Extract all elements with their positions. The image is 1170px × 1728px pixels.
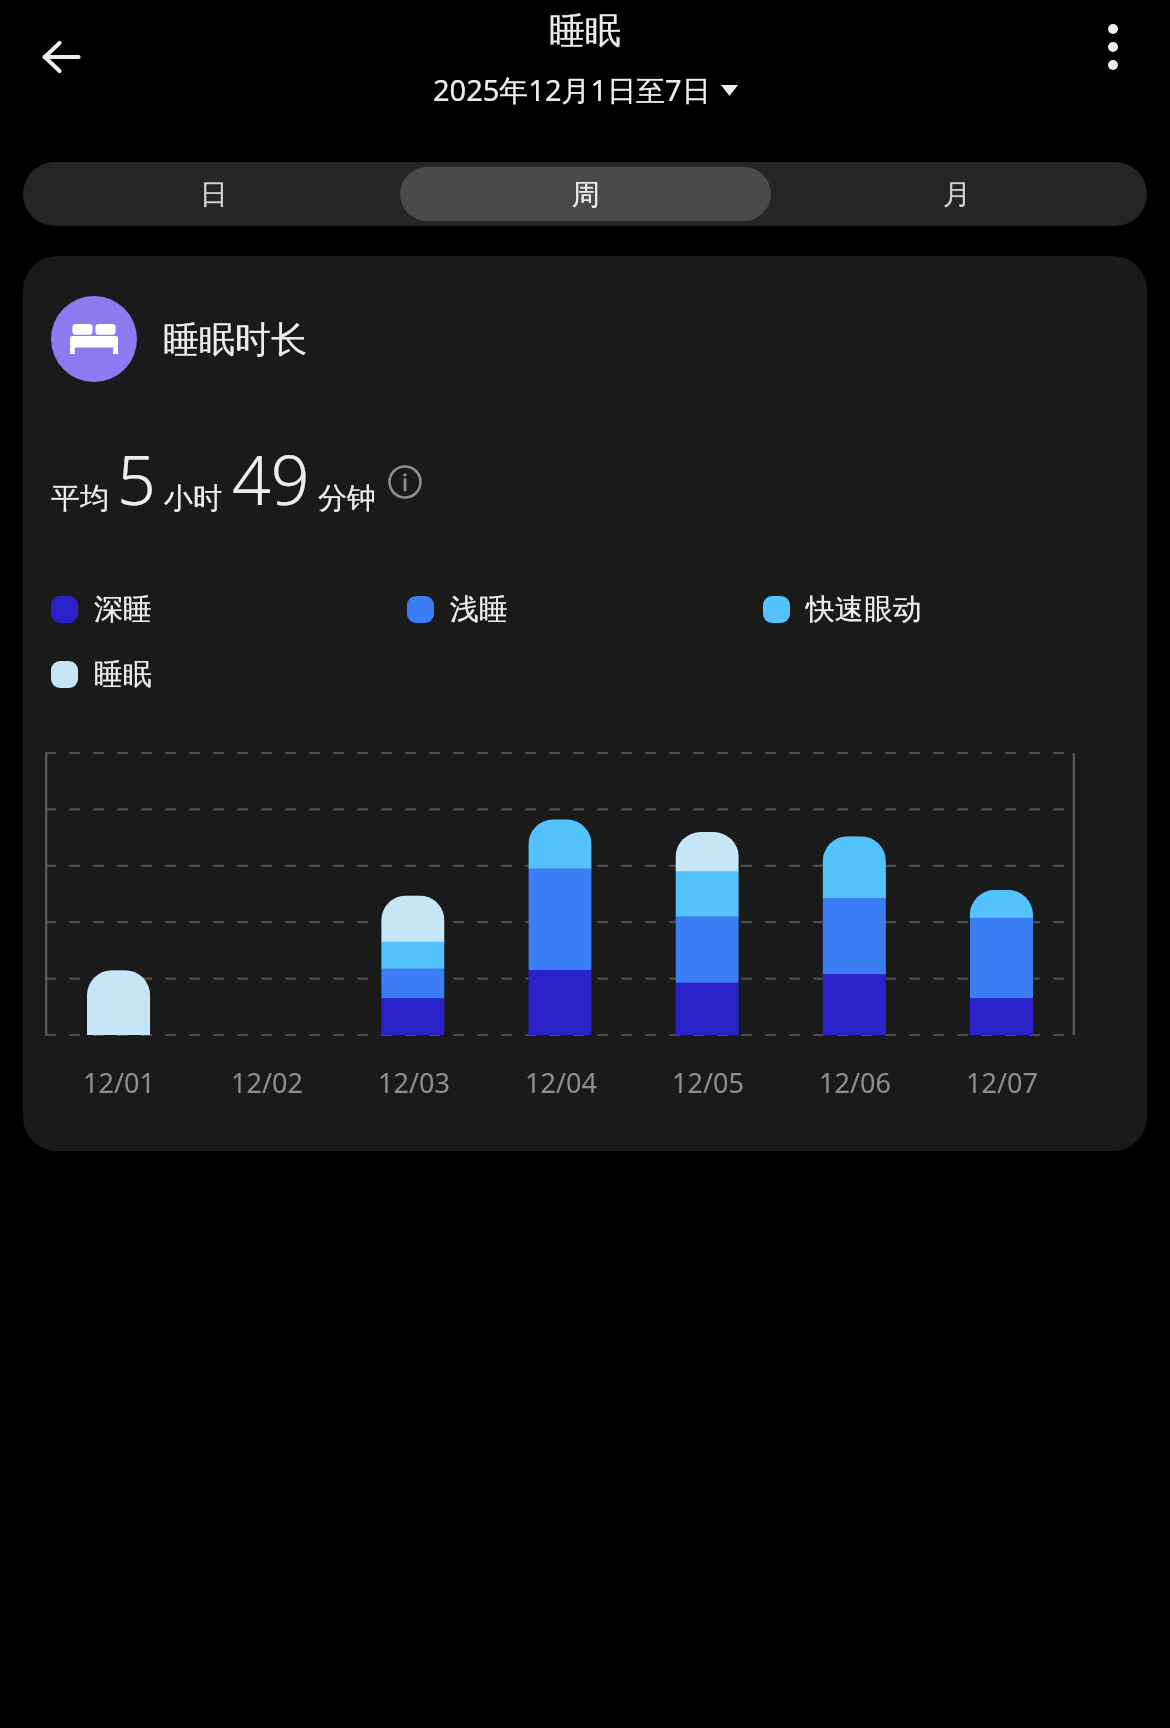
staticText: 2025年12月1日至7日: [433, 70, 711, 110]
staticText: 12/01: [83, 1064, 155, 1101]
button[interactable]: 日: [28, 167, 400, 221]
staticText: 12/03: [378, 1064, 450, 1101]
staticText: 12/07: [966, 1064, 1038, 1101]
staticText: 5: [117, 432, 156, 525]
staticText: 平均: [51, 480, 109, 517]
button[interactable]: 月: [771, 167, 1142, 221]
button[interactable]: 周: [400, 167, 771, 221]
button[interactable]: 深睡: [51, 591, 407, 628]
staticText: 睡眠: [94, 656, 152, 693]
staticText: 周: [572, 177, 600, 212]
staticText: 睡眠: [549, 8, 621, 53]
staticText: 12/02: [231, 1064, 303, 1101]
staticText: 浅睡: [450, 591, 508, 628]
button[interactable]: 2025年12月1日至7日: [427, 67, 744, 113]
staticText: 月: [943, 177, 971, 212]
button[interactable]: Back: [24, 20, 98, 94]
staticText: 49: [232, 432, 310, 525]
staticText: 小时: [164, 480, 222, 517]
button[interactable]: 浅睡: [407, 591, 763, 628]
button[interactable]: 快速眼动: [763, 591, 1119, 628]
staticText: 快速眼动: [806, 591, 922, 628]
staticText: 睡眠时长: [163, 317, 307, 362]
button[interactable]: 睡眠: [51, 656, 407, 693]
staticText: 日: [200, 177, 228, 212]
staticText: 深睡: [94, 591, 152, 628]
staticText: 12/04: [525, 1064, 597, 1101]
staticText: 12/06: [819, 1064, 891, 1101]
button[interactable]: More options: [1080, 14, 1146, 80]
staticText: 分钟: [318, 480, 376, 517]
button[interactable]: 睡眠时长: [23, 256, 1147, 1151]
button[interactable]: Info: [386, 463, 424, 501]
staticText: 12/05: [672, 1064, 744, 1101]
